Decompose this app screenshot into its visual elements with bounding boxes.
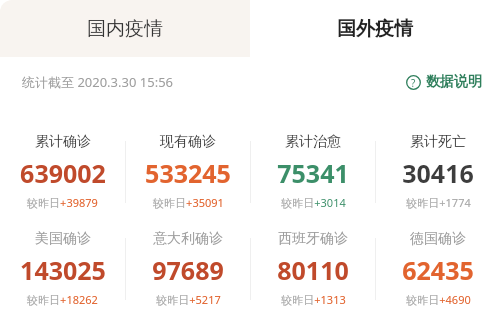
staticText: 62435 [402,253,474,287]
staticText: 西班牙确诊 [278,230,348,248]
button[interactable]: 国外疫情 [250,0,500,57]
staticText: 数据说明 [426,73,482,91]
staticText: 30416 [402,156,474,190]
staticText: 统计截至 2020.3.30 15:56 [22,73,174,91]
staticText: 97689 [152,253,224,287]
other: 数据说明 [406,75,421,90]
staticText: 国外疫情 [337,17,413,41]
staticText: 德国确诊 [410,230,466,248]
staticText: 国内疫情 [87,17,163,41]
staticText: 143025 [20,253,106,287]
staticText: ? [411,76,416,90]
staticText: 现有确诊 [160,133,216,151]
staticText: 533245 [145,156,231,190]
staticText: 意大利确诊 [153,230,223,248]
staticText: 累计确诊 [35,133,91,151]
staticText: 较昨日+5217 [156,292,221,307]
staticText: 639002 [20,156,106,190]
staticText: 较昨日+39879 [27,195,98,210]
button[interactable]: 累计死亡 [376,133,500,210]
button[interactable]: 西班牙确诊 [251,230,375,307]
staticText: 较昨日+1774 [406,195,471,210]
button[interactable]: 现有确诊 [126,133,250,210]
staticText: 累计治愈 [285,133,341,151]
button[interactable]: 意大利确诊 [126,230,250,307]
staticText: 美国确诊 [35,230,91,248]
button[interactable]: 累计治愈 [251,133,375,210]
staticText: 较昨日+3014 [281,195,346,210]
staticText: 80110 [277,253,349,287]
staticText: 较昨日+18262 [27,292,98,307]
staticText: 较昨日+1313 [281,292,346,307]
button[interactable]: 数据说明 [406,73,482,91]
staticText: 累计死亡 [410,133,466,151]
button[interactable]: 美国确诊 [0,230,125,307]
staticText: 较昨日+4690 [406,292,471,307]
button[interactable]: 德国确诊 [376,230,500,307]
button[interactable]: 国内疫情 [0,0,250,57]
staticText: 较昨日+35091 [153,195,224,210]
button[interactable]: 累计确诊 [0,133,125,210]
staticText: 75341 [277,156,349,190]
